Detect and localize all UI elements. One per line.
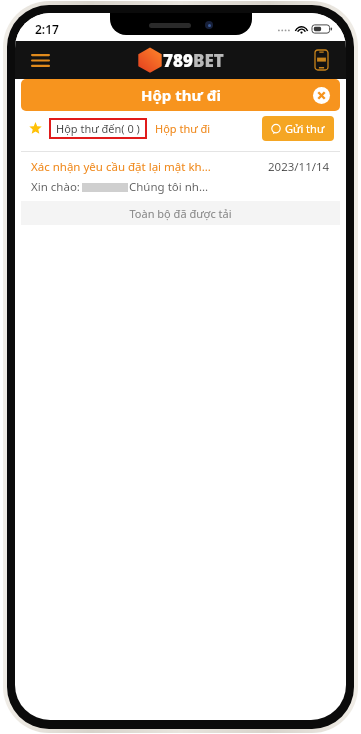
- button[interactable]: Close: [310, 84, 332, 106]
- staticText: Chúng tôi nh...: [129, 179, 209, 195]
- button[interactable]: Hộp thư đến( 0 ): [56, 121, 140, 136]
- staticText: Hộp thư đi: [155, 121, 211, 136]
- button[interactable]: Download app: [308, 47, 334, 73]
- staticText: Toàn bộ đã được tải: [129, 206, 232, 221]
- staticText: BET: [193, 49, 224, 72]
- staticText: Hộp thư đến( 0 ): [56, 121, 140, 136]
- staticText: Hộp thư đi: [141, 85, 221, 105]
- button[interactable]: Xác nhận yêu cầu đặt lại mật kh...: [21, 152, 340, 201]
- staticText: Xin chào:: [31, 179, 80, 195]
- staticText: 789: [163, 49, 193, 72]
- staticText: 2:17: [35, 21, 59, 37]
- button[interactable]: Gửi thư: [262, 116, 334, 141]
- staticText: 2023/11/14: [268, 159, 330, 175]
- staticText: Xác nhận yêu cầu đặt lại mật kh...: [31, 159, 211, 175]
- button[interactable]: Menu: [25, 45, 55, 75]
- staticText: Gửi thư: [285, 121, 325, 136]
- button[interactable]: Hộp thư đi: [155, 121, 211, 136]
- button[interactable]: 789: [137, 47, 224, 73]
